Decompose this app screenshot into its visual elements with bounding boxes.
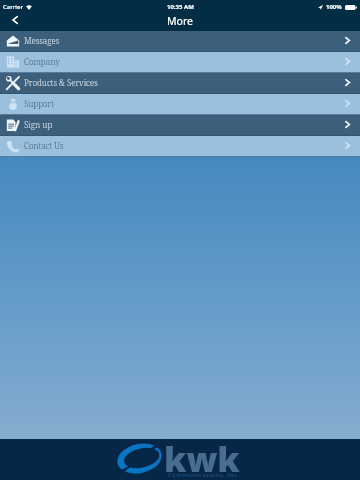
staticText: Messages bbox=[24, 35, 60, 46]
button[interactable]: Company bbox=[0, 52, 360, 73]
staticText: Contact Us bbox=[24, 140, 64, 151]
staticText: kwk bbox=[164, 436, 240, 477]
staticText: Carrier bbox=[3, 3, 23, 11]
staticText: Communications, Inc. bbox=[168, 471, 240, 478]
staticText: 10:35 AM bbox=[167, 3, 194, 11]
staticText: Sign up bbox=[24, 119, 53, 130]
staticText: 100% bbox=[326, 3, 342, 11]
staticText: Company bbox=[24, 56, 60, 67]
staticText: More bbox=[167, 14, 193, 28]
button[interactable]: Messages bbox=[0, 31, 360, 52]
staticText: Products & Services bbox=[24, 77, 98, 88]
button[interactable]: Sign up bbox=[0, 115, 360, 136]
button[interactable]: Back bbox=[0, 13, 30, 31]
button[interactable]: Products & Services bbox=[0, 73, 360, 94]
button[interactable]: Contact Us bbox=[0, 136, 360, 157]
button[interactable]: Support bbox=[0, 94, 360, 115]
staticText: Support bbox=[24, 98, 54, 109]
